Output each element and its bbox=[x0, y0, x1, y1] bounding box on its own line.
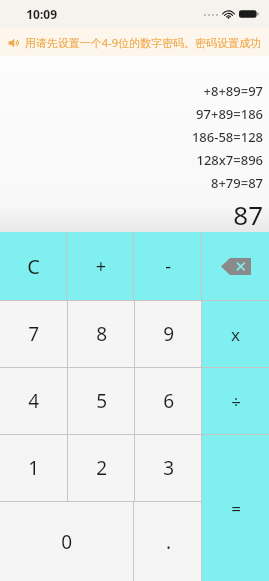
button[interactable]: 7 bbox=[0, 301, 67, 367]
button[interactable]: = bbox=[202, 435, 269, 581]
staticText: 3 bbox=[163, 455, 174, 481]
button[interactable]: 4 bbox=[0, 368, 67, 434]
button[interactable]: x bbox=[202, 301, 269, 367]
staticText: 6 bbox=[163, 388, 174, 414]
button[interactable]: 8 bbox=[68, 301, 134, 367]
staticText: +8+89=97 bbox=[203, 82, 263, 100]
staticText: x bbox=[231, 323, 240, 346]
button[interactable]: 3 bbox=[135, 435, 201, 501]
staticText: 1 bbox=[28, 455, 39, 481]
button[interactable]: . bbox=[134, 502, 201, 581]
button[interactable]: ÷ bbox=[202, 368, 269, 434]
staticText: 87 bbox=[233, 197, 263, 232]
staticText: + bbox=[95, 254, 106, 279]
staticText: 10:09 bbox=[26, 6, 57, 22]
staticText: 9 bbox=[163, 321, 174, 347]
button[interactable]: 1 bbox=[0, 435, 67, 501]
staticText: 97+89=186 bbox=[196, 105, 263, 123]
button[interactable]: Backspace bbox=[202, 232, 269, 300]
staticText: . bbox=[165, 529, 171, 555]
button[interactable]: + bbox=[67, 232, 133, 300]
button[interactable]: - bbox=[134, 232, 201, 300]
button[interactable]: 用请先设置一个4-9位的数字密码。密码设置成功 bbox=[0, 28, 269, 56]
button[interactable]: 6 bbox=[135, 368, 201, 434]
button[interactable]: 9 bbox=[135, 301, 201, 367]
staticText: - bbox=[165, 254, 171, 279]
staticText: 0 bbox=[61, 529, 72, 555]
staticText: 5 bbox=[96, 388, 107, 414]
button[interactable]: C bbox=[0, 232, 66, 300]
staticText: 7 bbox=[28, 321, 39, 347]
button[interactable]: 5 bbox=[68, 368, 134, 434]
staticText: = bbox=[231, 497, 241, 520]
button[interactable]: 0 bbox=[0, 502, 133, 581]
staticText: 8 bbox=[96, 321, 107, 347]
staticText: 8+79=87 bbox=[210, 174, 263, 192]
staticText: 128x7=896 bbox=[196, 151, 263, 169]
staticText: C bbox=[27, 253, 40, 280]
staticText: 用请先设置一个4-9位的数字密码。密码设置成功 bbox=[24, 35, 261, 50]
button[interactable]: 2 bbox=[68, 435, 134, 501]
staticText: 2 bbox=[96, 455, 107, 481]
staticText: 186-58=128 bbox=[191, 128, 263, 146]
staticText: ÷ bbox=[231, 390, 241, 413]
staticText: 4 bbox=[28, 388, 39, 414]
